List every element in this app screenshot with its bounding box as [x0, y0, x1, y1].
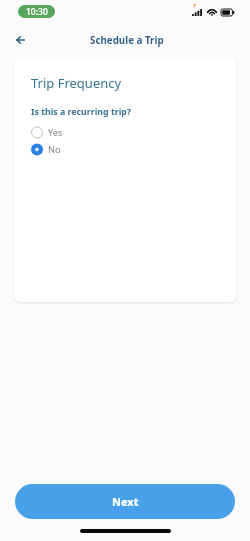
- staticText: Is this a recurring trip?: [31, 106, 132, 118]
- staticText: Next: [112, 494, 139, 509]
- button[interactable]: Next: [15, 484, 235, 519]
- button[interactable]: No: [31, 141, 220, 158]
- staticText: Yes: [48, 126, 63, 139]
- staticText: 10:30: [26, 6, 48, 18]
- staticText: Trip Frequency: [31, 74, 122, 92]
- button[interactable]: Yes: [31, 124, 220, 141]
- button[interactable]: Back: [8, 28, 32, 52]
- staticText: Schedule a Trip: [90, 34, 164, 47]
- staticText: No: [48, 143, 61, 156]
